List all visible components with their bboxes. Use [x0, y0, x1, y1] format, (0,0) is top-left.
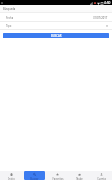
button[interactable]: Favoritos	[47, 171, 68, 180]
staticText: Fecha	[6, 16, 14, 20]
staticText: Nube	[76, 177, 83, 180]
staticText: Cuenta	[97, 177, 106, 180]
staticText: 31/07/2017	[93, 16, 108, 20]
button[interactable]: Cuenta	[91, 171, 112, 180]
button[interactable]: Fecha	[0, 14, 112, 21]
button[interactable]: BUSCAR	[3, 33, 109, 38]
staticText: 4:50	[104, 1, 111, 5]
staticText: Tipo	[6, 24, 12, 28]
button[interactable]: Nube	[69, 171, 90, 180]
staticText: Búsqueda	[3, 7, 16, 11]
staticText: BUSCAR	[51, 34, 62, 38]
button[interactable]: Inicio	[1, 171, 22, 180]
staticText: Inicio	[8, 177, 15, 180]
button[interactable]: Tipo	[0, 22, 112, 29]
staticText: Buscar	[30, 177, 39, 180]
staticText: Favoritos	[52, 177, 64, 180]
button[interactable]: Buscar	[24, 171, 45, 180]
